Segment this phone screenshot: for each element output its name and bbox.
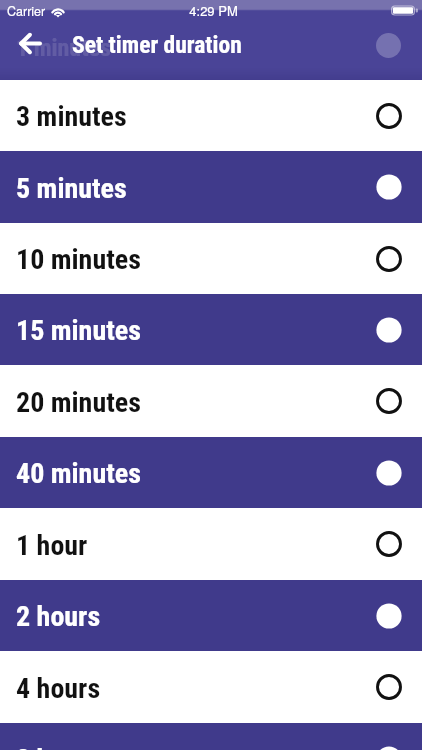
button[interactable]: 3 minutes	[0, 80, 422, 151]
button[interactable]: 5 minutes	[0, 151, 422, 223]
staticText: Carrier	[7, 2, 46, 20]
staticText: 4 hours	[16, 672, 101, 705]
button[interactable]: 2 hours	[0, 580, 422, 651]
button[interactable]: 4 hours	[0, 651, 422, 723]
button[interactable]: 10 minutes	[0, 223, 422, 294]
staticText: 4:29 PM	[189, 1, 238, 20]
staticText: 5 minutes	[16, 172, 127, 205]
staticText: 20 minutes	[16, 386, 141, 419]
staticText: 1 minutes	[16, 34, 111, 62]
staticText: 15 minutes	[16, 314, 141, 347]
staticText: 1 hour	[16, 529, 88, 562]
button[interactable]: 8 hours	[0, 723, 422, 750]
other: Battery full	[391, 5, 418, 16]
other: Wi-Fi signal	[51, 5, 65, 18]
button[interactable]: 15 minutes	[0, 294, 422, 365]
staticText: 3 minutes	[16, 100, 127, 133]
staticText: Set timer duration	[72, 31, 242, 59]
staticText: 2 hours	[16, 600, 101, 633]
button[interactable]: 40 minutes	[0, 437, 422, 508]
button[interactable]: More options	[376, 33, 401, 58]
button[interactable]: 20 minutes	[0, 365, 422, 437]
button[interactable]: Navigate up	[0, 10, 60, 80]
staticText: 40 minutes	[16, 457, 141, 490]
button[interactable]: 1 hour	[0, 508, 422, 580]
staticText: 10 minutes	[16, 243, 141, 276]
staticText: 8 hours	[16, 743, 101, 750]
